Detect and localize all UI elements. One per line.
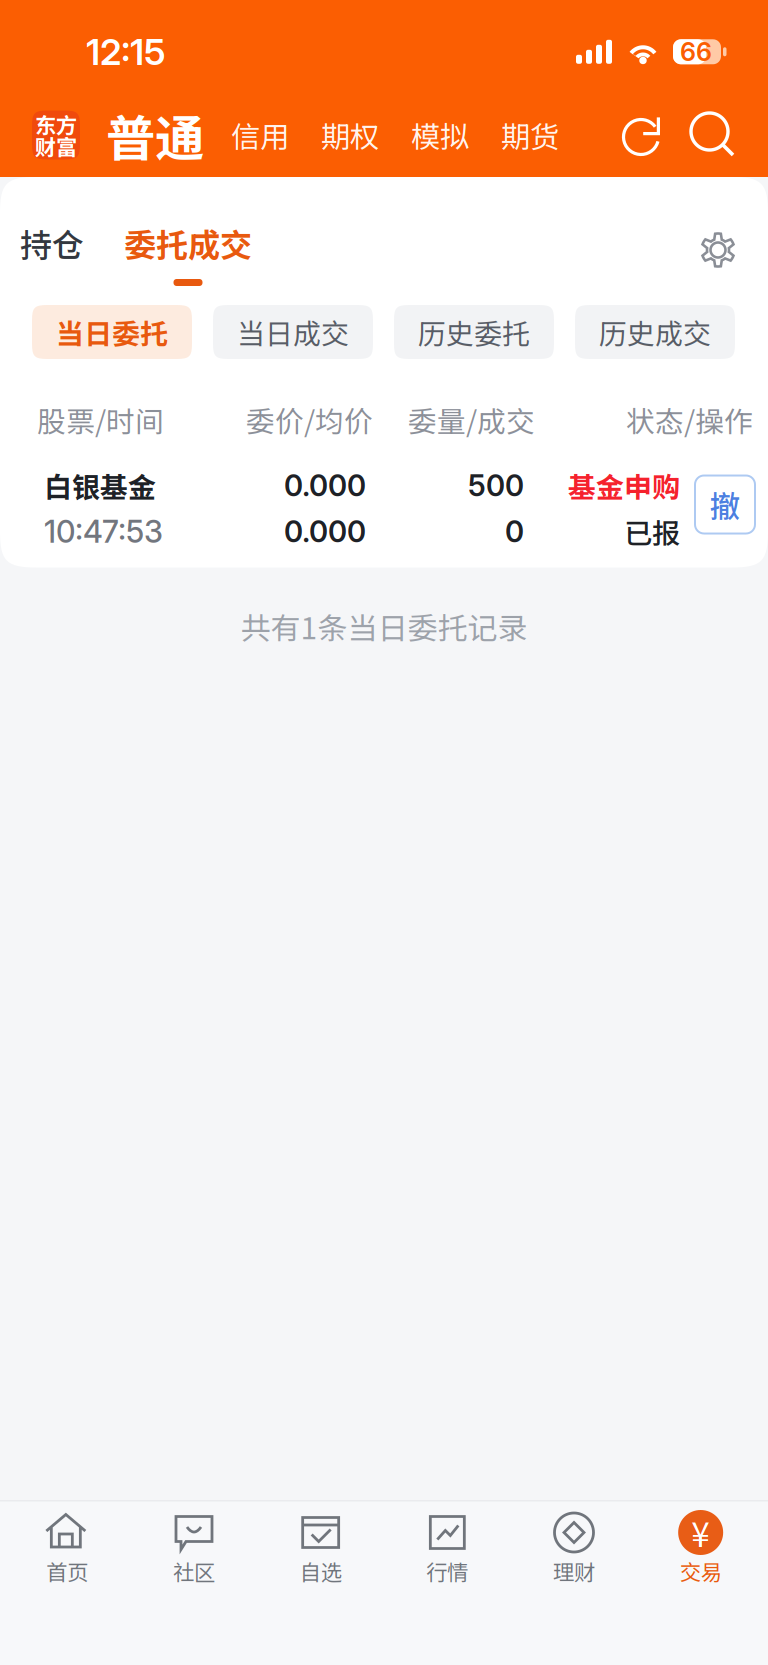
staticText: 历史委托: [418, 312, 530, 352]
button[interactable]: 历史委托: [394, 305, 554, 359]
staticText: 0: [505, 514, 524, 549]
button[interactable]: 撤: [695, 475, 755, 533]
button[interactable]: 行情: [384, 1500, 511, 1602]
staticText: 共有1条当日委托记录: [240, 604, 527, 648]
staticText: 自选: [300, 1556, 342, 1586]
staticText: 委量/成交: [408, 399, 535, 440]
staticText: 普通: [106, 99, 204, 171]
button[interactable]: 首页: [4, 1500, 131, 1602]
button[interactable]: 期权: [305, 106, 395, 164]
staticText: 期货: [501, 114, 559, 156]
staticText: 信用: [231, 114, 289, 156]
staticText: 交易: [680, 1556, 722, 1586]
staticText: 东方: [35, 109, 77, 139]
staticText: 理财: [553, 1556, 595, 1586]
button[interactable]: 历史成交: [575, 305, 735, 359]
button[interactable]: 当日委托: [32, 305, 192, 359]
staticText: 模拟: [411, 114, 469, 156]
staticText: 财富: [35, 131, 77, 161]
staticText: 已报: [624, 511, 680, 552]
staticText: 状态/操作: [626, 399, 753, 440]
staticText: 股票/时间: [37, 399, 164, 440]
button[interactable]: 信用: [215, 106, 305, 164]
button[interactable]: 刷新: [622, 113, 664, 157]
button[interactable]: 设置: [700, 232, 736, 286]
staticText: 持仓: [20, 220, 84, 266]
staticText: 撤: [709, 482, 740, 527]
staticText: 白银基金: [44, 465, 156, 506]
staticText: 社区: [173, 1556, 215, 1586]
staticText: 0.000: [284, 468, 366, 503]
staticText: 当日成交: [237, 312, 349, 352]
staticText: 行情: [426, 1556, 468, 1586]
button[interactable]: 社区: [131, 1500, 257, 1602]
staticText: 500: [468, 468, 524, 503]
button[interactable]: 搜索: [691, 113, 735, 157]
button[interactable]: 自选: [257, 1500, 384, 1602]
button[interactable]: ¥: [637, 1500, 764, 1602]
button[interactable]: 普通: [80, 104, 215, 166]
staticText: 委托成交: [124, 220, 252, 266]
button[interactable]: 期货: [485, 106, 575, 164]
staticText: 12:15: [86, 30, 166, 74]
button[interactable]: 模拟: [395, 106, 485, 164]
button[interactable]: 理财: [511, 1500, 637, 1602]
staticText: 10:47:53: [44, 513, 163, 550]
button[interactable]: 委托成交: [84, 224, 252, 286]
staticText: 历史成交: [599, 312, 711, 352]
staticText: ¥: [691, 1508, 710, 1557]
button[interactable]: 持仓: [20, 224, 84, 286]
staticText: 委价/均价: [246, 399, 373, 440]
button[interactable]: 东方财富: [32, 110, 80, 159]
staticText: 66: [680, 36, 712, 67]
staticText: 0.000: [284, 514, 366, 549]
staticText: 基金申购: [568, 465, 680, 506]
staticText: 期权: [321, 114, 379, 156]
staticText: 首页: [46, 1556, 88, 1586]
staticText: 当日委托: [56, 312, 168, 352]
button[interactable]: 当日成交: [213, 305, 373, 359]
